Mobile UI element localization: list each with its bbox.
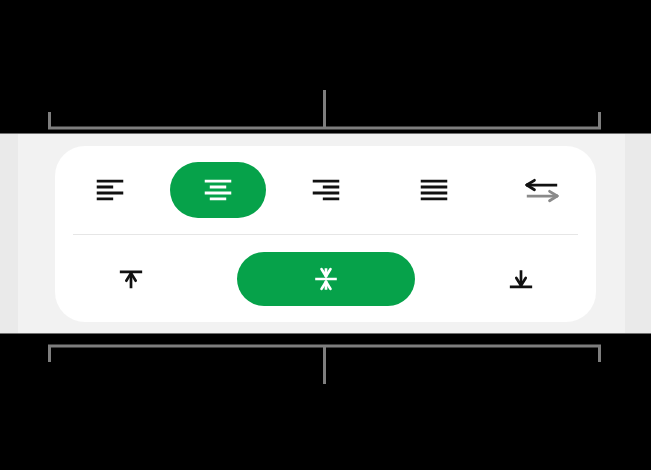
- button[interactable]: Align right: [272, 146, 380, 234]
- button[interactable]: Align top: [55, 235, 206, 322]
- button[interactable]: Align middle, selected: [237, 252, 415, 306]
- button[interactable]: Align left: [55, 146, 164, 234]
- button[interactable]: Align bottom: [446, 235, 596, 322]
- button[interactable]: Align center, selected: [170, 162, 266, 218]
- button[interactable]: Justify: [380, 146, 488, 234]
- button[interactable]: Text direction: [488, 146, 596, 234]
